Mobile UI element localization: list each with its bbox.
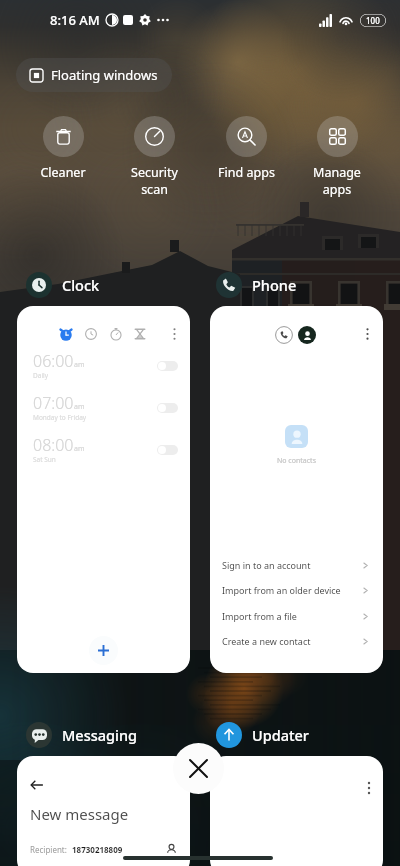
button[interactable]: Manage apps — [293, 116, 381, 197]
staticText: Clock — [62, 275, 100, 295]
button[interactable]: Cleaner — [19, 116, 107, 181]
button[interactable]: Alarm — [59, 327, 73, 341]
button[interactable]: Timer — [134, 328, 146, 340]
staticText: Recipient: — [30, 844, 67, 855]
staticText: Import from an older device — [222, 584, 341, 596]
staticText: 06:00 — [33, 350, 74, 372]
button[interactable]: Phone — [216, 272, 297, 298]
button[interactable]: Dialer — [210, 306, 383, 673]
button[interactable]: More options — [170, 328, 179, 337]
button[interactable]: Floating windows — [16, 58, 172, 92]
staticText: Import from a file — [222, 610, 297, 622]
staticText: Messaging — [62, 725, 138, 745]
button[interactable]: World clock — [85, 328, 97, 340]
staticText: 08:00 — [33, 434, 74, 456]
staticText: 8:16 AM — [50, 11, 100, 29]
button[interactable]: Security scan — [110, 116, 198, 197]
button[interactable]: 07:00 — [17, 392, 190, 432]
button[interactable] — [210, 756, 383, 866]
staticText: Updater — [252, 725, 309, 745]
staticText: Manage apps — [313, 164, 361, 197]
staticText: Create a new contact — [222, 635, 311, 647]
button[interactable]: Pick contact — [166, 844, 177, 855]
staticText: Sat Sun — [33, 455, 56, 464]
staticText: No contacts — [277, 456, 316, 466]
button[interactable]: Close all — [173, 743, 224, 794]
staticText: Security scan — [131, 164, 178, 197]
button[interactable]: Alarm — [17, 306, 190, 673]
staticText: am — [74, 360, 85, 370]
button[interactable]: Find apps — [202, 116, 290, 181]
button[interactable]: More options — [363, 328, 372, 337]
button[interactable]: Toggle alarm — [157, 403, 178, 413]
staticText: 07:00 — [33, 392, 74, 414]
button[interactable]: Import from an older device — [210, 578, 383, 602]
button[interactable]: Back — [17, 756, 190, 866]
staticText: Monday to Friday — [33, 413, 87, 422]
staticText: Phone — [252, 275, 297, 295]
staticText: am — [74, 444, 85, 454]
button[interactable]: Dialer — [275, 326, 293, 344]
button[interactable]: Toggle alarm — [157, 361, 178, 371]
button[interactable]: 08:00 — [17, 434, 190, 474]
staticText: Sign in to an account — [222, 559, 311, 571]
button[interactable]: Back — [30, 778, 44, 792]
button[interactable]: Import from a file — [210, 604, 383, 628]
button[interactable]: Contacts — [298, 326, 316, 344]
button[interactable]: Stopwatch — [110, 328, 122, 340]
staticText: 100 — [366, 15, 380, 26]
staticText: Floating windows — [51, 66, 158, 84]
staticText: 18730218809 — [72, 844, 123, 855]
button[interactable]: Updater — [216, 722, 309, 748]
staticText: Daily — [33, 371, 49, 380]
button[interactable]: Create a new contact — [210, 629, 383, 653]
staticText: Find apps — [218, 164, 275, 181]
button[interactable]: Clock — [26, 272, 100, 298]
button[interactable]: Messaging — [26, 722, 138, 748]
button[interactable]: Toggle alarm — [157, 445, 178, 455]
staticText: am — [74, 402, 85, 412]
button[interactable]: 06:00 — [17, 350, 190, 390]
button[interactable]: Add alarm — [89, 636, 118, 665]
button[interactable]: Sign in to an account — [210, 553, 383, 577]
staticText: New message — [30, 804, 129, 824]
staticText: Cleaner — [40, 164, 86, 181]
